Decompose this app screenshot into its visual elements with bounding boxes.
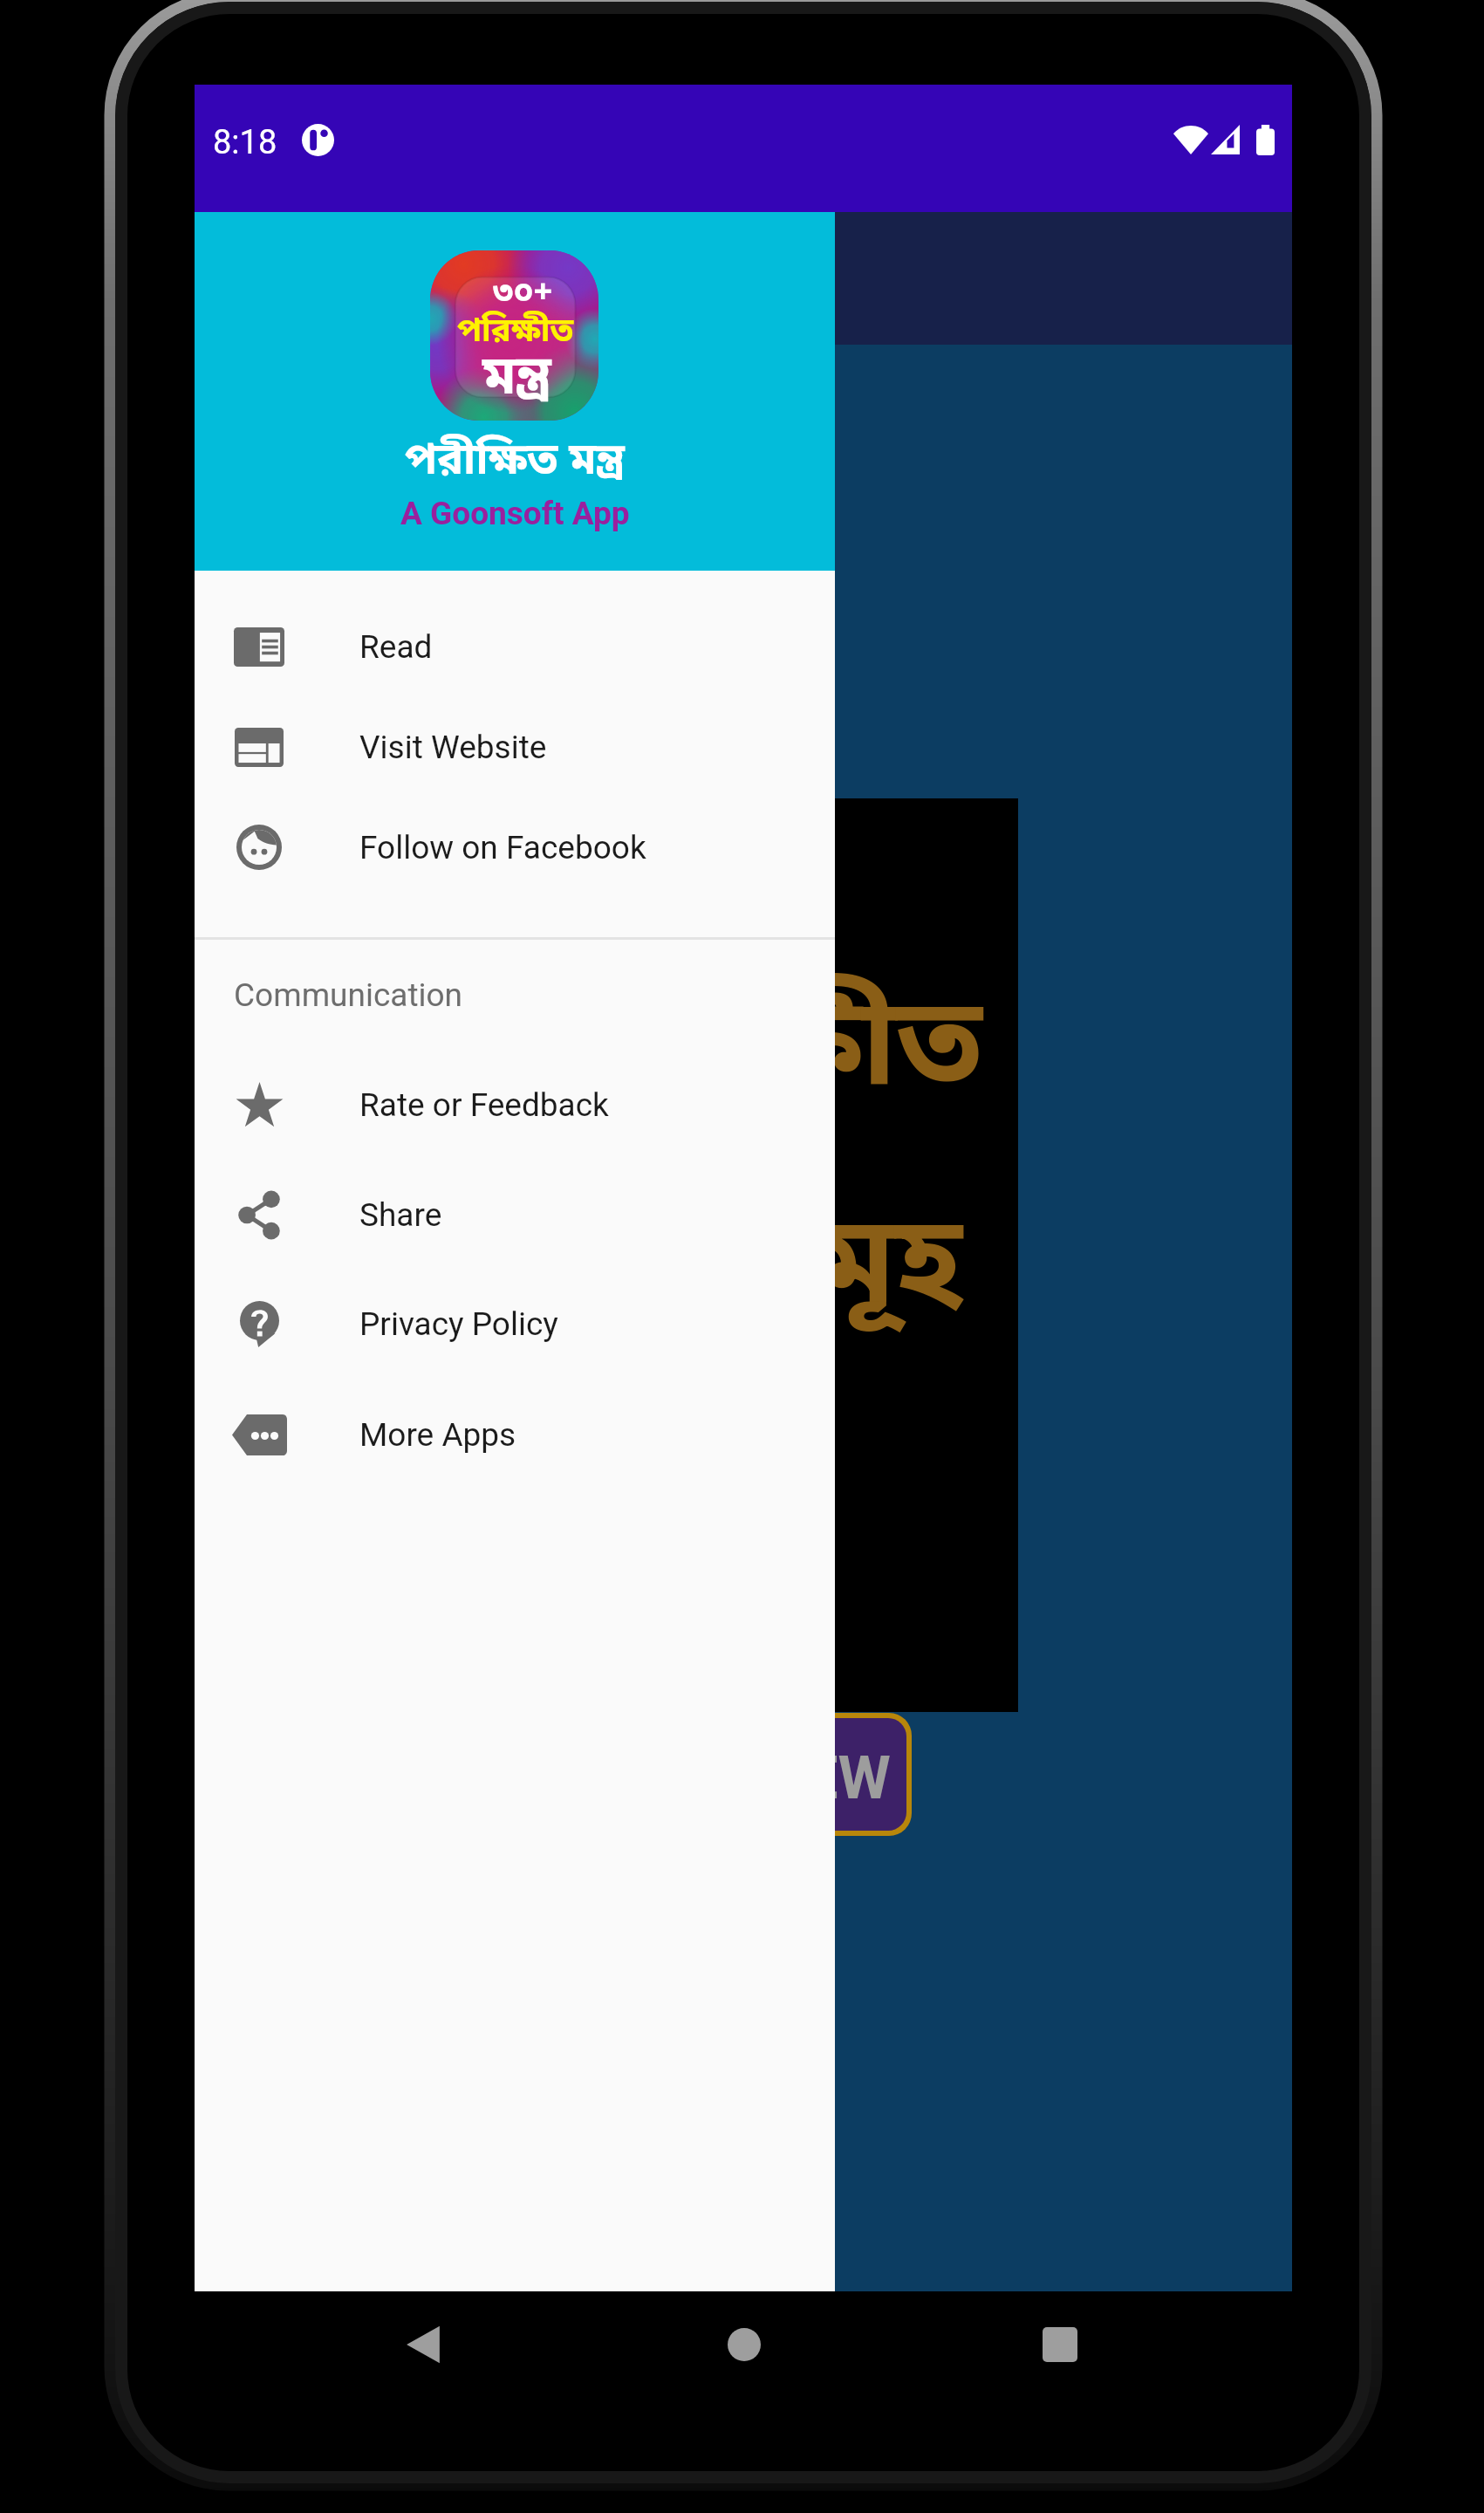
button[interactable]: Recent apps [1018, 2303, 1102, 2386]
staticText: A Goonsoft App [400, 495, 630, 532]
staticText: Share [359, 1196, 442, 1234]
staticText: Privacy Policy [359, 1305, 558, 1343]
button[interactable]: Rate or Feedback [195, 1051, 835, 1159]
staticText: Communication [234, 976, 463, 1014]
button[interactable]: Follow on Facebook [195, 793, 835, 901]
staticText: পরিক্ষীত [457, 311, 574, 354]
staticText: Visit Website [359, 729, 547, 766]
staticText: পরীক্ষিত মন্ত্র [405, 434, 625, 491]
button[interactable]: Back [381, 2303, 465, 2386]
staticText: 8:18 [213, 123, 277, 162]
staticText: Read [359, 628, 433, 666]
button[interactable]: More Apps [195, 1380, 835, 1489]
button[interactable]: Visit Website [195, 693, 835, 801]
button[interactable]: Home [702, 2303, 786, 2386]
button[interactable]: Privacy Policy [195, 1270, 835, 1378]
button[interactable]: Read [195, 592, 835, 701]
staticText: ৩০+ [493, 272, 553, 316]
staticText: মন্ত্র [482, 344, 551, 415]
staticText: Follow on Facebook [359, 829, 646, 866]
staticText: পরিক্ষীত মন্ত্র সমূহ [554, 972, 982, 1352]
button[interactable]: Share [195, 1161, 835, 1269]
staticText: NEW [762, 1743, 891, 1813]
staticText: Rate or Feedback [359, 1086, 609, 1124]
staticText: More Apps [359, 1416, 516, 1454]
